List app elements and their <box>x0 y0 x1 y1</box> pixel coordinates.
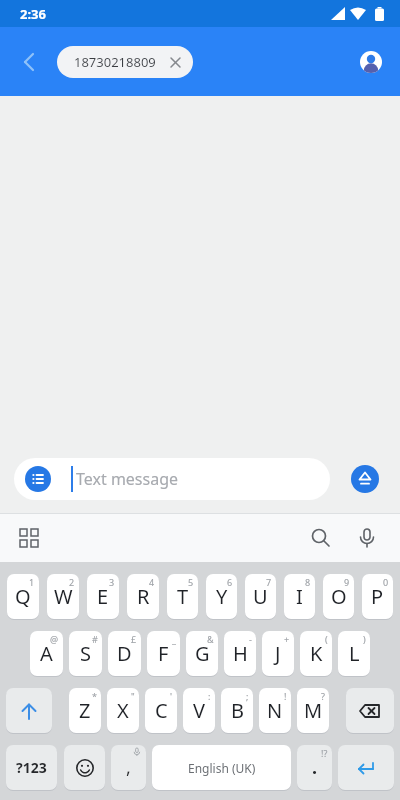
staticText: 2 <box>69 576 75 588</box>
button[interactable]: W <box>47 574 79 619</box>
button[interactable]: A <box>30 631 63 676</box>
button[interactable] <box>360 51 382 73</box>
staticText: , <box>126 755 131 780</box>
staticText: 7 <box>266 576 272 588</box>
staticText: 8 <box>305 576 311 588</box>
staticText: 1 <box>29 576 35 588</box>
staticText: ? <box>321 690 325 702</box>
button[interactable] <box>19 528 39 548</box>
staticText: N <box>267 697 283 724</box>
staticText: ' <box>170 690 173 702</box>
button[interactable] <box>14 47 44 77</box>
staticText: D <box>117 640 132 667</box>
button[interactable]: I <box>284 574 315 619</box>
button[interactable] <box>356 527 378 549</box>
staticText: # <box>92 633 98 645</box>
button[interactable]: R <box>127 574 159 619</box>
button[interactable]: , <box>111 745 146 790</box>
button[interactable]: Y <box>206 574 237 619</box>
button[interactable]: O <box>323 574 354 619</box>
staticText: " <box>131 690 135 702</box>
staticText: Q <box>15 583 31 610</box>
staticText: . <box>312 755 318 780</box>
staticText: _ <box>172 633 176 645</box>
staticText: ?123 <box>16 758 47 777</box>
staticText: M <box>304 697 323 724</box>
staticText: H <box>233 640 248 667</box>
button[interactable]: 18730218809 <box>57 46 193 78</box>
button[interactable]: N <box>259 688 291 733</box>
button[interactable]: K <box>300 631 332 676</box>
button[interactable]: G <box>186 631 218 676</box>
staticText: & <box>207 633 214 645</box>
staticText: J <box>275 640 281 667</box>
button[interactable]: Text message <box>14 458 330 500</box>
staticText: K <box>310 640 323 667</box>
button[interactable]: C <box>145 688 177 733</box>
staticText: C <box>155 697 168 724</box>
staticText: P <box>371 583 384 610</box>
staticText: 3 <box>109 576 115 588</box>
button[interactable]: P <box>362 574 393 619</box>
staticText: B <box>231 697 244 724</box>
staticText: £ <box>131 633 137 645</box>
staticText: * <box>92 690 97 702</box>
button[interactable] <box>310 527 332 549</box>
button[interactable]: ?123 <box>6 745 57 790</box>
staticText: !? <box>321 747 328 759</box>
staticText: ) <box>363 633 366 645</box>
button[interactable]: L <box>338 631 370 676</box>
button[interactable]: E <box>87 574 119 619</box>
button[interactable]: T <box>167 574 198 619</box>
staticText: O <box>331 583 347 610</box>
staticText: English (UK) <box>188 760 256 776</box>
staticText: ; <box>246 690 249 702</box>
staticText: ! <box>284 690 287 702</box>
staticText: Z <box>79 697 91 724</box>
button[interactable]: M <box>297 688 329 733</box>
staticText: @ <box>50 633 59 645</box>
staticText: ( <box>325 633 328 645</box>
button[interactable]: U <box>245 574 276 619</box>
staticText: + <box>284 633 290 645</box>
staticText: L <box>349 640 360 667</box>
staticText: - <box>249 633 252 645</box>
staticText: 18730218809 <box>74 53 156 71</box>
staticText: E <box>97 583 109 610</box>
staticText: U <box>253 583 268 610</box>
button[interactable]: D <box>108 631 141 676</box>
button[interactable]: Q <box>7 574 39 619</box>
button[interactable]: B <box>221 688 253 733</box>
button[interactable] <box>338 745 394 790</box>
button[interactable] <box>351 465 379 493</box>
button[interactable]: H <box>224 631 256 676</box>
staticText: 2:36 <box>20 5 46 23</box>
staticText: R <box>137 583 150 610</box>
button[interactable] <box>346 688 394 733</box>
button[interactable]: F <box>147 631 180 676</box>
staticText: Text message <box>76 468 179 490</box>
staticText: 6 <box>227 576 233 588</box>
button[interactable]: V <box>183 688 215 733</box>
staticText: S <box>80 640 91 667</box>
staticText: 5 <box>188 576 194 588</box>
staticText: Y <box>216 583 228 610</box>
staticText: I <box>296 583 303 610</box>
staticText: G <box>195 640 210 667</box>
button[interactable]: J <box>262 631 294 676</box>
staticText: 4 <box>149 576 155 588</box>
button[interactable] <box>6 688 52 733</box>
button[interactable] <box>25 466 51 492</box>
staticText: F <box>158 640 169 667</box>
button[interactable]: S <box>69 631 102 676</box>
button[interactable]: English (UK) <box>152 745 291 790</box>
staticText: T <box>177 583 189 610</box>
button[interactable]: X <box>107 688 139 733</box>
button[interactable]: Z <box>69 688 101 733</box>
staticText: X <box>117 697 129 724</box>
staticText: A <box>40 640 53 667</box>
staticText: 9 <box>344 576 350 588</box>
staticText: : <box>208 690 211 702</box>
button[interactable]: . <box>297 745 332 790</box>
button[interactable] <box>64 745 105 790</box>
